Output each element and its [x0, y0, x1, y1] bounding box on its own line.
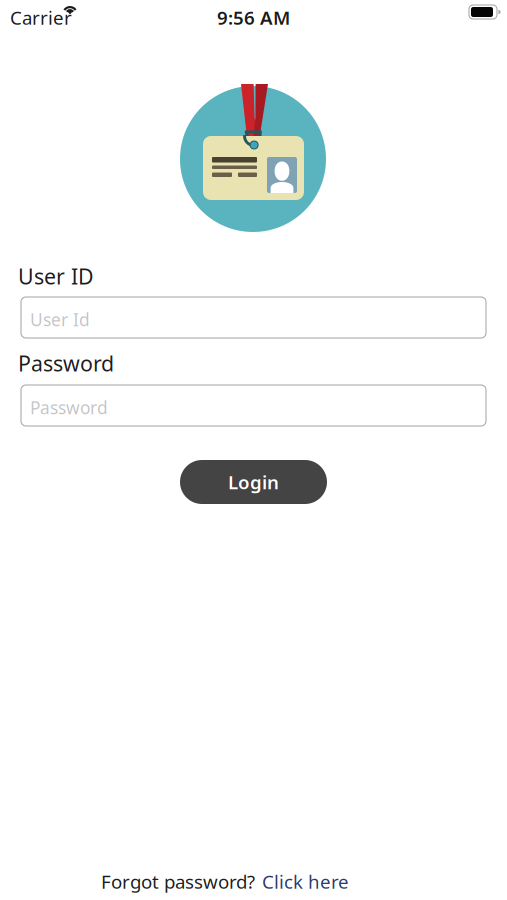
staticText: Password: [30, 396, 108, 419]
button[interactable]: Forgot password?: [101, 869, 349, 894]
staticText: Password: [18, 349, 114, 377]
staticText: Login: [228, 470, 279, 494]
staticText: User Id: [30, 308, 90, 331]
staticText: Forgot password?: [101, 869, 255, 894]
button[interactable]: User Id: [21, 297, 486, 338]
staticText: 9:56 AM: [217, 5, 290, 30]
staticText: Carrier: [10, 5, 72, 30]
button[interactable]: Password: [21, 385, 486, 426]
staticText: User ID: [18, 262, 94, 290]
button[interactable]: Login: [180, 460, 327, 504]
staticText: Click here: [262, 869, 349, 894]
